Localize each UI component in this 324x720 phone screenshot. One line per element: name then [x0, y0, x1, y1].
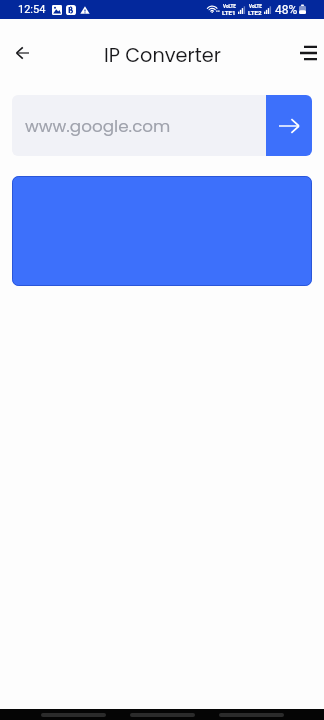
staticText: IP Converter — [104, 42, 221, 69]
button[interactable]: www.google.com — [12, 95, 266, 156]
staticText: 12:54 — [18, 3, 46, 16]
button[interactable]: Convert — [266, 95, 312, 156]
staticText: www.google.com — [25, 114, 171, 138]
staticText: VoLTE — [223, 4, 236, 9]
button[interactable] — [12, 176, 312, 286]
button[interactable]: Home — [130, 713, 195, 717]
button[interactable]: Back — [0, 34, 42, 76]
staticText: 48% — [275, 3, 298, 17]
button[interactable]: Menu — [282, 34, 324, 76]
staticText: LTE1 — [222, 9, 236, 16]
staticText: LTE2 — [248, 9, 262, 16]
button[interactable]: Back — [41, 713, 106, 717]
staticText: VoLTE — [249, 4, 262, 9]
button[interactable]: Recents — [219, 713, 284, 717]
